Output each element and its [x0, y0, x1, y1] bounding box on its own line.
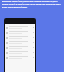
button[interactable]: Item icon: [5, 35, 35, 40]
button[interactable]: Item icon: [5, 45, 35, 50]
button[interactable]: Item icon: [5, 55, 35, 60]
button[interactable]: Item icon: [5, 50, 35, 55]
staticText: Breaking news: the brand new Wordle arch…: [2, 0, 61, 9]
button[interactable]: Item icon: [5, 25, 35, 30]
button[interactable]: Item icon: [5, 40, 35, 45]
button[interactable]: Item icon: [5, 30, 35, 35]
